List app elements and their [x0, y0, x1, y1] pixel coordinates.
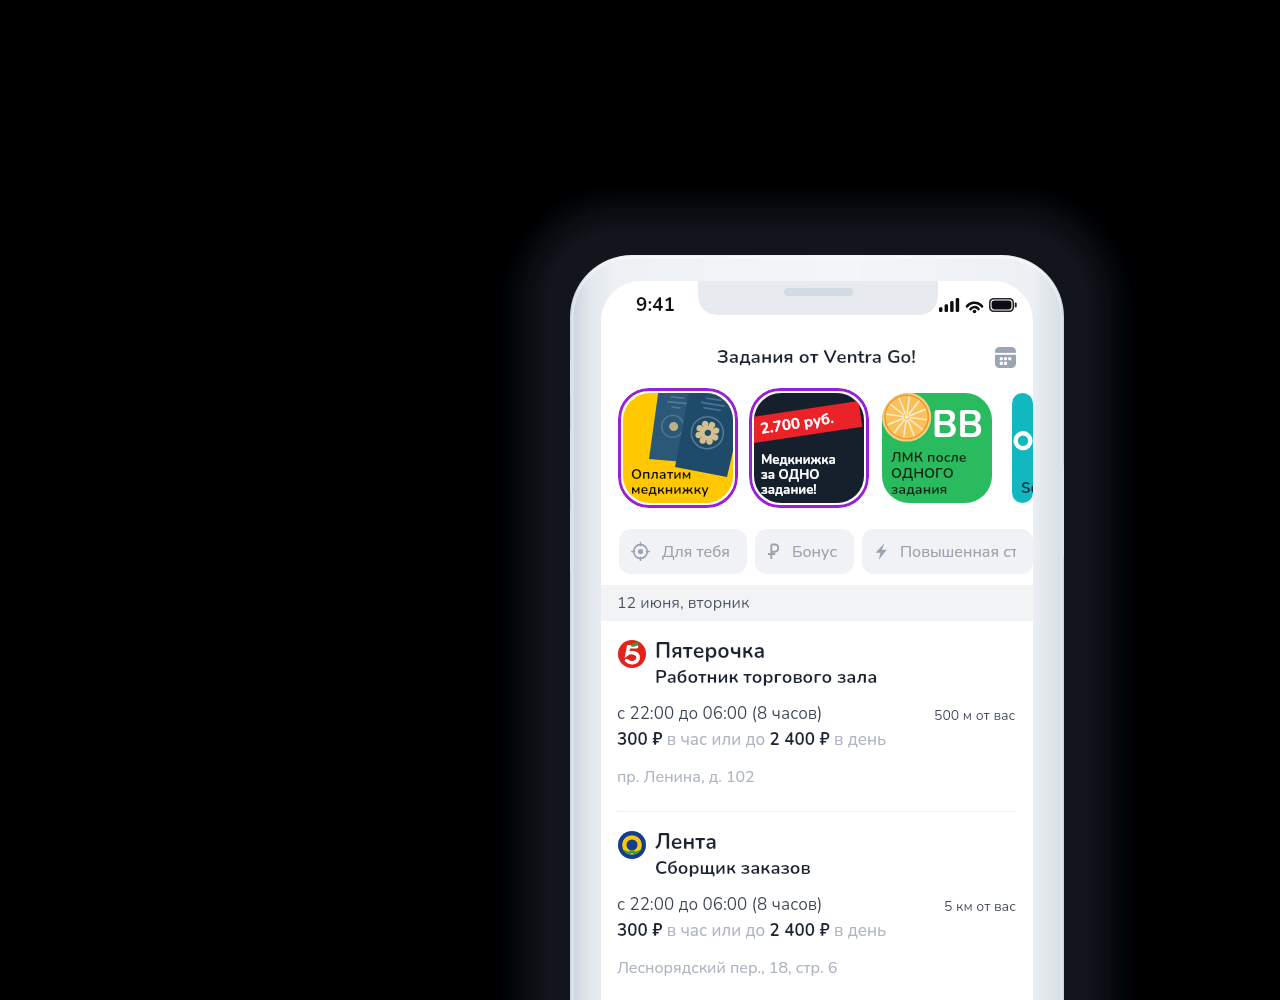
button[interactable]: Бонус — [755, 529, 854, 574]
staticText: 300 ₽ в час или до 2 400 ₽ в день — [617, 919, 887, 942]
staticText: Лента — [655, 828, 717, 857]
button[interactable]: Sо — [1012, 393, 1033, 503]
staticText: ЛМК после ОДНОГО задания — [891, 448, 967, 499]
button[interactable]: Повышенная ставка — [862, 529, 1033, 574]
staticText: Медкнижка за ОДНО задание! — [761, 451, 836, 498]
staticText: Задания от Ventra Go! — [717, 344, 916, 369]
staticText: 5 км от вас — [944, 897, 1016, 916]
staticText: с 22:00 до 06:00 (8 часов) — [617, 893, 823, 916]
staticText: Для тебя — [662, 541, 730, 563]
staticText: 500 м от вас — [934, 706, 1016, 725]
button[interactable]: Лента — [601, 812, 1033, 1000]
button[interactable]: Для тебя — [619, 529, 747, 574]
button[interactable]: 2.700 руб. — [749, 388, 869, 508]
staticText: Сборщик заказов — [655, 856, 811, 881]
staticText: Sо — [1021, 478, 1033, 498]
staticText: 9:41 — [636, 292, 675, 318]
staticText: Пятерочка — [655, 637, 766, 666]
staticText: Работник торгового зала — [655, 665, 878, 690]
staticText: 300 ₽ в час или до 2 400 ₽ в день — [617, 728, 887, 751]
staticText: 12 июня, вторник — [617, 592, 750, 614]
staticText: Леснорядский пер., 18, стр. 6 — [617, 957, 838, 979]
staticText: Оплатим медкнижку — [631, 465, 709, 499]
staticText: Бонус — [792, 541, 837, 563]
staticText: BB — [932, 400, 983, 450]
staticText: с 22:00 до 06:00 (8 часов) — [617, 702, 823, 725]
button[interactable]: Оплатим медкнижку — [618, 388, 738, 508]
staticText: пр. Ленина, д. 102 — [617, 766, 755, 788]
staticText: 2.700 руб. — [759, 408, 835, 439]
button[interactable]: BB — [882, 393, 992, 503]
button[interactable]: Calendar — [987, 339, 1023, 375]
staticText: Повышенная ставка — [900, 541, 1016, 563]
button[interactable]: Пятерочка — [601, 621, 1033, 811]
